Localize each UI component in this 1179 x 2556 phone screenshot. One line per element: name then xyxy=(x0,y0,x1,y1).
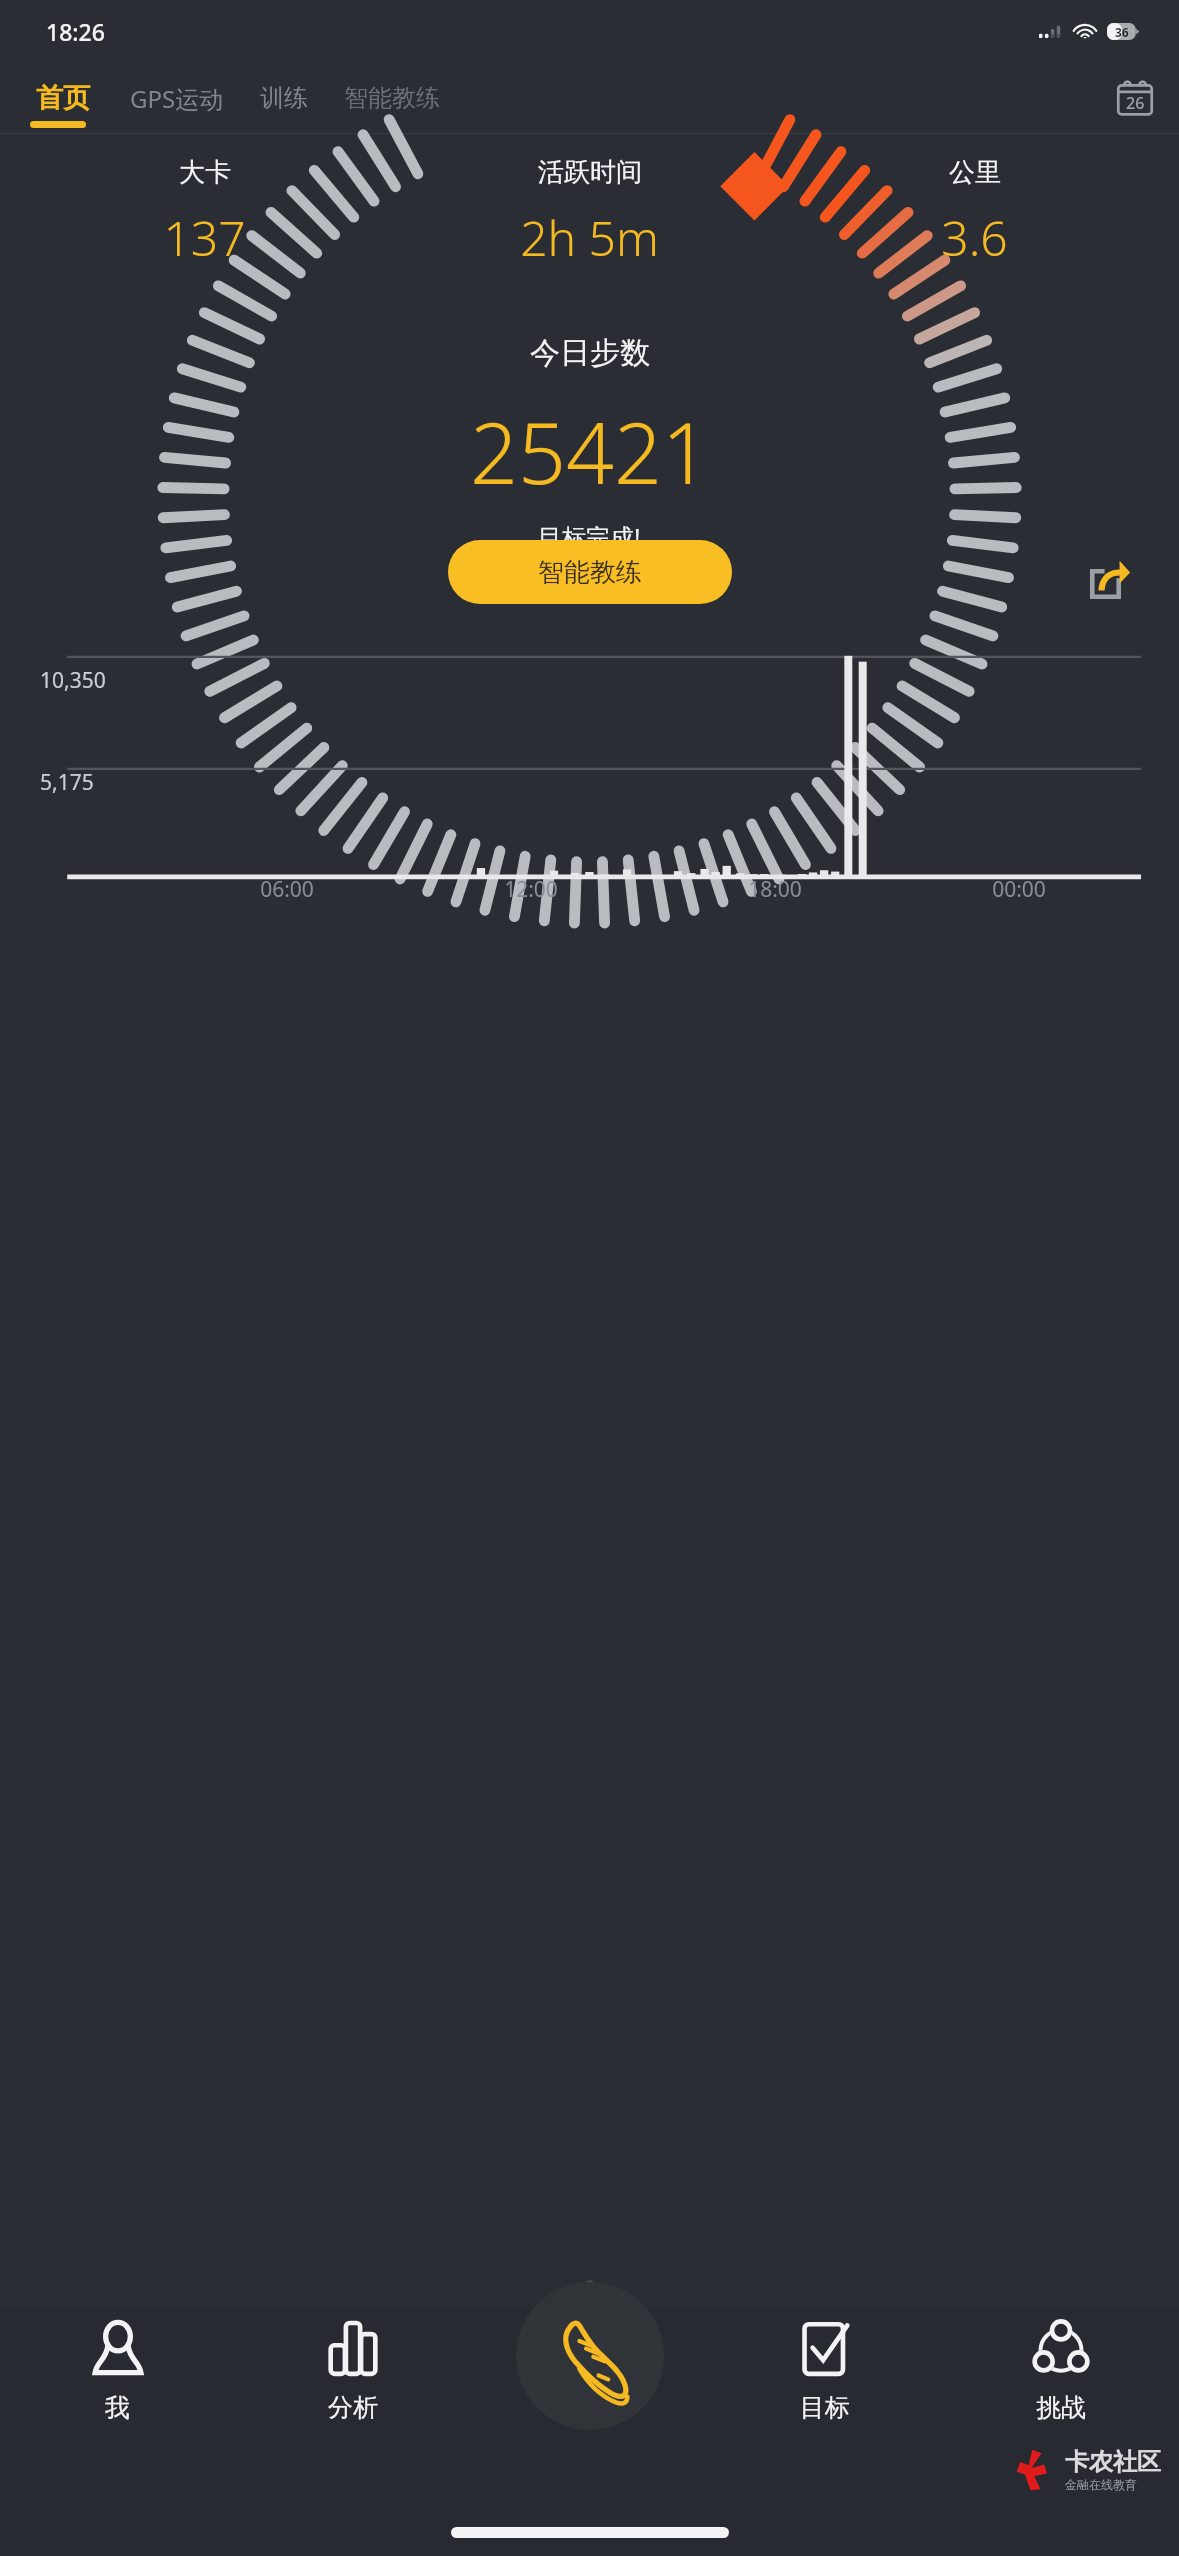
staticText: 10,350 xyxy=(40,666,106,695)
staticText: 分析 xyxy=(328,2392,378,2423)
staticText: 18:26 xyxy=(46,16,105,47)
button[interactable]: 公里 xyxy=(782,156,1167,270)
staticText: 12:00 xyxy=(409,875,653,904)
button[interactable]: Steps xyxy=(471,2316,707,2446)
staticText: 00:00 xyxy=(897,875,1141,904)
button[interactable]: 大卡 xyxy=(12,156,397,270)
button[interactable]: 分析 xyxy=(235,2316,471,2425)
staticText: 251% 已经完成 xyxy=(501,563,678,599)
staticText: 大卡 xyxy=(179,156,231,189)
staticText: 26 xyxy=(1126,92,1145,114)
staticText: 我 xyxy=(105,2392,130,2423)
button[interactable]: 训练 xyxy=(256,83,312,113)
staticText: 首页 xyxy=(36,81,90,115)
staticText: 18:00 xyxy=(653,875,897,904)
button[interactable]: 智能教练 xyxy=(340,83,444,113)
button[interactable]: 活跃时间 xyxy=(397,156,782,270)
staticText: 挑战 xyxy=(1036,2392,1086,2423)
staticText: 今日步数 xyxy=(530,334,650,372)
button[interactable]: GPS运动 xyxy=(126,82,228,115)
staticText: 目标完成! xyxy=(538,520,641,553)
button[interactable]: Calendar, day 26 xyxy=(1113,76,1157,120)
staticText: 137 xyxy=(163,205,246,270)
button[interactable]: 挑战 xyxy=(943,2316,1179,2425)
staticText: 2h 5m xyxy=(520,205,659,270)
button[interactable]: 智能教练 xyxy=(448,540,732,604)
staticText: 5,175 xyxy=(40,768,94,797)
staticText: 智能教练 xyxy=(538,556,642,589)
staticText: 公里 xyxy=(949,156,1001,189)
staticText: 25421 xyxy=(470,394,710,508)
staticText: 目标 xyxy=(800,2392,850,2423)
button[interactable]: 我 xyxy=(0,2316,235,2425)
staticText: 3.6 xyxy=(941,205,1008,270)
staticText: 06:00 xyxy=(165,875,409,904)
button[interactable]: 目标 xyxy=(707,2316,943,2425)
staticText: 卡农社区 xyxy=(1065,2447,1161,2477)
staticText: 金融在线教育 xyxy=(1065,2477,1137,2492)
staticText: 活跃时间 xyxy=(538,156,642,189)
staticText: 36 xyxy=(1115,24,1129,40)
button[interactable]: Share xyxy=(1083,554,1135,606)
button[interactable]: 首页 xyxy=(32,81,94,115)
